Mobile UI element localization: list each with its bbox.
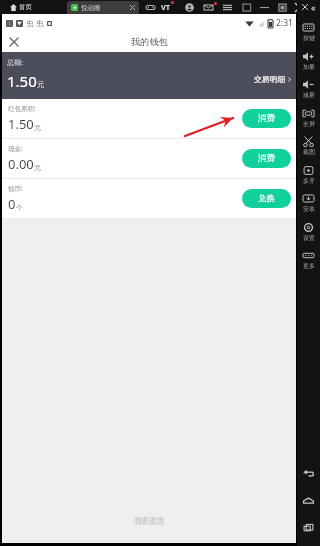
button[interactable]: Back xyxy=(298,463,319,484)
staticText: 0.00 xyxy=(8,155,34,173)
staticText: 消费 xyxy=(258,153,275,164)
staticText: 总额: xyxy=(7,58,23,68)
staticText: 减量 xyxy=(303,91,315,99)
staticText: 截图 xyxy=(303,148,315,156)
staticText: 悦币: xyxy=(8,184,23,193)
staticText: 虫 xyxy=(36,19,44,28)
button[interactable]: 我要提现 xyxy=(130,512,168,529)
button[interactable]: 消费 xyxy=(242,149,291,168)
button[interactable]: Minimize xyxy=(258,1,271,14)
button[interactable]: Restore xyxy=(241,1,254,14)
staticText: 0 xyxy=(8,195,16,213)
button[interactable]: « xyxy=(311,1,316,13)
staticText: 设置 xyxy=(303,234,315,242)
button[interactable]: 按键 xyxy=(297,22,320,42)
staticText: 悦动圈 xyxy=(81,4,101,12)
staticText: 消费 xyxy=(258,113,275,124)
staticText: 兑换 xyxy=(258,193,275,204)
button[interactable]: 安装 xyxy=(297,193,320,213)
button[interactable]: 全屏 xyxy=(297,108,320,128)
button[interactable]: VT xyxy=(161,0,174,14)
staticText: 元 xyxy=(37,80,45,89)
button[interactable]: 截图 xyxy=(297,136,320,156)
button[interactable]: 多开 xyxy=(297,165,320,185)
button[interactable]: 兑换 xyxy=(242,189,291,208)
staticText: 元 xyxy=(34,163,41,172)
button[interactable]: Close xyxy=(302,4,308,10)
button[interactable]: 悦动圈 xyxy=(67,1,139,14)
button[interactable]: 交易明细 xyxy=(251,71,295,87)
staticText: VT xyxy=(161,2,171,12)
staticText: 安装 xyxy=(303,205,315,213)
staticText: 1.50 xyxy=(8,115,34,133)
button[interactable]: 消费 xyxy=(242,109,291,128)
staticText: 红包累积: xyxy=(8,104,36,113)
staticText: 更多 xyxy=(303,262,315,270)
button[interactable]: 现金: xyxy=(2,139,296,178)
staticText: 2:31 xyxy=(276,17,293,29)
staticText: 1.50 xyxy=(7,71,37,91)
staticText: 现金: xyxy=(8,144,23,153)
button[interactable]: Messages xyxy=(202,1,214,13)
staticText: 加量 xyxy=(303,63,315,71)
button[interactable]: Close window xyxy=(293,1,306,14)
button[interactable]: Home xyxy=(298,490,319,511)
button[interactable]: 减量 xyxy=(297,79,320,99)
button[interactable]: Games xyxy=(144,1,157,14)
staticText: 交易明细 xyxy=(254,74,286,84)
button[interactable]: Account xyxy=(183,1,196,14)
button[interactable]: Close xyxy=(5,33,23,51)
button[interactable]: 设置 xyxy=(297,222,320,242)
button[interactable]: Menu xyxy=(221,1,234,14)
button[interactable]: Maximize xyxy=(276,1,289,14)
staticText: 我的钱包 xyxy=(131,36,168,48)
staticText: 按键 xyxy=(303,34,315,42)
button[interactable]: 首页 xyxy=(10,0,32,14)
staticText: 全屏 xyxy=(303,120,315,128)
staticText: 多开 xyxy=(303,177,315,185)
button[interactable]: 加量 xyxy=(297,51,320,71)
button[interactable]: Close tab xyxy=(128,3,137,12)
button[interactable]: 悦币: xyxy=(2,179,296,218)
staticText: 首页 xyxy=(19,3,32,11)
button[interactable]: 红包累积: xyxy=(2,99,296,138)
staticText: 个 xyxy=(16,203,23,212)
button[interactable]: Recents xyxy=(298,517,319,538)
staticText: 虫 xyxy=(26,19,34,28)
staticText: 元 xyxy=(34,123,41,132)
button[interactable]: 更多 xyxy=(297,250,320,270)
